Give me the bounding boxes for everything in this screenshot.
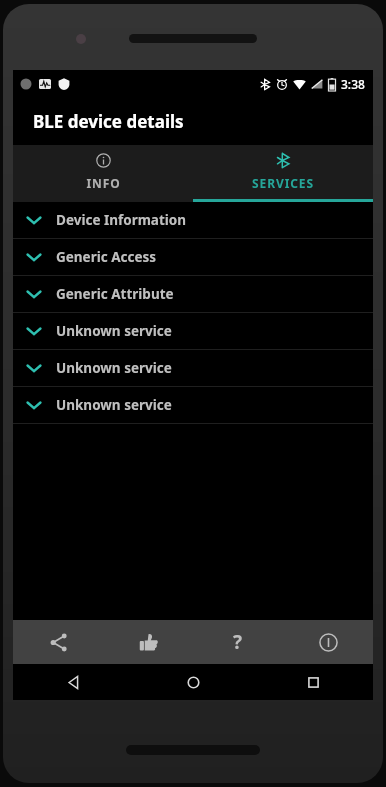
staticText: 3:38 <box>341 76 365 92</box>
button[interactable]: Unknown service <box>13 387 373 423</box>
button[interactable]: Unknown service <box>13 350 373 386</box>
staticText: INFO <box>86 175 121 191</box>
staticText: Generic Attribute <box>56 285 174 303</box>
staticText: SERVICES <box>252 175 314 191</box>
button[interactable]: Recents <box>253 664 373 700</box>
button[interactable]: Home <box>133 664 253 700</box>
staticText: ? <box>233 629 243 655</box>
button[interactable]: Back <box>13 664 133 700</box>
staticText: Unknown service <box>56 322 172 340</box>
button[interactable]: Rate <box>103 620 193 664</box>
button[interactable]: About <box>283 620 373 664</box>
staticText: Unknown service <box>56 359 172 377</box>
staticText: Generic Access <box>56 248 157 266</box>
button[interactable]: Generic Access <box>13 239 373 275</box>
staticText: BLE device details <box>33 110 184 133</box>
button[interactable]: Unknown service <box>13 313 373 349</box>
button[interactable]: Device Information <box>13 202 373 238</box>
button[interactable]: Share <box>13 620 103 664</box>
button[interactable]: SERVICES <box>193 145 373 202</box>
staticText: Unknown service <box>56 396 172 414</box>
button[interactable]: Help <box>193 620 283 664</box>
button[interactable]: INFO <box>13 145 193 202</box>
button[interactable]: Generic Attribute <box>13 276 373 312</box>
staticText: Device Information <box>56 211 187 229</box>
